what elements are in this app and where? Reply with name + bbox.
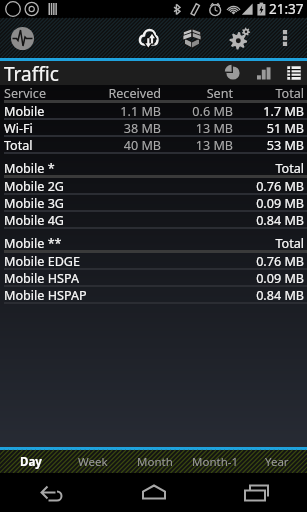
staticText: Received: [89, 85, 161, 100]
staticText: 0.84 MB: [233, 287, 304, 302]
staticText: Mobile **: [4, 235, 62, 250]
button[interactable]: Home: [103, 473, 205, 512]
staticText: 1.1 MB: [89, 103, 161, 118]
button[interactable]: Service: [0, 85, 307, 103]
staticText: Mobile *: [4, 160, 55, 175]
button[interactable]: Pie chart: [222, 62, 244, 84]
button[interactable]: Bar chart: [254, 62, 276, 84]
staticText: 13 MB: [161, 120, 233, 135]
staticText: Service: [4, 85, 47, 100]
staticText: Total: [233, 160, 304, 175]
staticText: Total: [233, 235, 304, 250]
staticText: 21:37: [269, 0, 304, 18]
staticText: Mobile 2G: [4, 178, 65, 193]
button[interactable]: Mobile **: [0, 235, 307, 253]
staticText: Total: [233, 85, 304, 100]
button[interactable]: Month: [124, 450, 185, 473]
staticText: 0.6 MB: [161, 103, 233, 118]
staticText: 0.09 MB: [233, 270, 304, 285]
button[interactable]: Back: [0, 473, 103, 512]
staticText: 40 MB: [89, 137, 161, 152]
staticText: 0.09 MB: [233, 195, 304, 210]
staticText: 13 MB: [161, 137, 233, 152]
staticText: Year: [265, 454, 289, 470]
button[interactable]: Mobile EDGE: [0, 253, 307, 270]
staticText: Mobile: [4, 103, 45, 118]
staticText: Mobile HSPA: [4, 270, 79, 285]
staticText: Month: [137, 454, 173, 470]
staticText: Mobile 4G: [4, 212, 65, 227]
staticText: Month-1: [192, 454, 239, 470]
button[interactable]: Week: [62, 450, 124, 473]
button[interactable]: Recent apps: [205, 473, 307, 512]
button[interactable]: App icon: [11, 27, 34, 50]
staticText: 0.84 MB: [233, 212, 304, 227]
staticText: 38 MB: [89, 120, 161, 135]
staticText: Total: [4, 137, 33, 152]
staticText: 1.7 MB: [233, 103, 304, 118]
staticText: Traffic: [4, 61, 59, 85]
staticText: Sent: [161, 85, 233, 100]
button[interactable]: Mobile 2G: [0, 178, 307, 195]
button[interactable]: Mobile: [0, 103, 307, 120]
button[interactable]: Mobile 4G: [0, 212, 307, 229]
button[interactable]: Mobile 3G: [0, 195, 307, 212]
button[interactable]: Year: [246, 450, 307, 473]
button[interactable]: Mobile HSPAP: [0, 287, 307, 304]
button[interactable]: Wi-Fi: [0, 120, 307, 137]
staticText: 0.76 MB: [233, 253, 304, 268]
staticText: 0.76 MB: [233, 178, 304, 193]
staticText: Wi-Fi: [4, 120, 33, 135]
staticText: Day: [20, 454, 42, 470]
button[interactable]: Day: [0, 450, 62, 473]
staticText: 53 MB: [233, 137, 304, 152]
button[interactable]: Traffic: [129, 19, 167, 57]
staticText: Week: [78, 454, 108, 470]
button[interactable]: Mobile HSPA: [0, 270, 307, 287]
button[interactable]: Mobile *: [0, 160, 307, 178]
button[interactable]: Total: [0, 137, 307, 154]
button[interactable]: Settings: [221, 19, 259, 57]
button[interactable]: Month-1: [185, 450, 246, 473]
staticText: Mobile HSPAP: [4, 287, 87, 302]
button[interactable]: Applications: [173, 19, 211, 57]
staticText: Mobile 3G: [4, 195, 65, 210]
staticText: Mobile EDGE: [4, 253, 81, 268]
button[interactable]: Table view: [283, 62, 305, 84]
staticText: 51 MB: [233, 120, 304, 135]
button[interactable]: More options: [266, 19, 304, 57]
